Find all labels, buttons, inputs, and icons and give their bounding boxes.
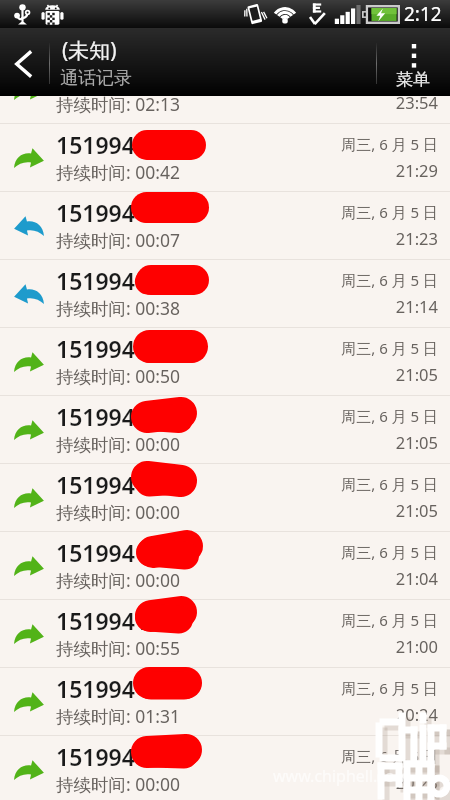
staticText: 周三, 6 月 5 日	[341, 338, 438, 358]
staticText: 1519941	[56, 537, 149, 568]
staticText: 151994	[56, 129, 135, 160]
staticText: 1519941	[56, 401, 149, 432]
staticText: 持续时间: 00:07	[56, 228, 180, 252]
staticText: 周三, 6 月 5 日	[341, 610, 438, 630]
staticText: 周三, 6 月 5 日	[341, 678, 438, 698]
button[interactable]: Back	[0, 28, 49, 96]
button[interactable]: 1519941	[0, 192, 450, 259]
staticText: 周三, 6 月 5 日	[341, 134, 438, 154]
staticText: 持续时间: 01:31	[56, 704, 180, 728]
button[interactable]: 151994	[0, 124, 450, 191]
staticText: 周三, 6 月 5 日	[341, 66, 438, 86]
staticText: 周三, 6 月 5 日	[341, 474, 438, 494]
staticText: 23:54	[395, 91, 438, 113]
button[interactable]: 1519941	[0, 532, 450, 599]
button[interactable]: 1519941	[0, 464, 450, 531]
button[interactable]: 151994	[0, 668, 450, 735]
button[interactable]: 1519941	[0, 600, 450, 667]
button[interactable]: 151994	[0, 328, 450, 395]
staticText: 持续时间: 00:00	[56, 772, 180, 796]
staticText: 151994	[56, 333, 135, 364]
staticText: 21:04	[395, 567, 438, 589]
staticText: 21:29	[395, 159, 438, 181]
staticText: 持续时间: 00:50	[56, 364, 180, 388]
staticText: 20:24	[395, 703, 438, 725]
staticText: 21:23	[395, 227, 438, 249]
staticText: www.chiphell.com	[273, 765, 410, 787]
staticText: 21:05	[395, 499, 438, 521]
staticText: 周三, 6 月 5 日	[341, 542, 438, 562]
staticText: 持续时间: 00:00	[56, 568, 180, 592]
staticText: 持续时间: 00:55	[56, 636, 180, 660]
staticText: 1519941	[56, 469, 149, 500]
button[interactable]: 151994	[0, 260, 450, 327]
button[interactable]: 151994	[0, 736, 450, 800]
staticText: 周三, 6 月 5 日	[341, 406, 438, 426]
staticText: 1519940	[56, 61, 149, 92]
button[interactable]: 1519941	[0, 396, 450, 463]
staticText: 1519941	[56, 605, 149, 636]
button[interactable]: 菜单 Menu	[385, 28, 450, 96]
button[interactable]: 1519940	[0, 56, 450, 123]
staticText: 通话记录	[60, 67, 132, 90]
staticText: 周三, 6 月 5 日	[341, 270, 438, 290]
staticText: 151994	[56, 741, 135, 772]
staticText: 2:12	[404, 1, 442, 27]
staticText: 1519941	[56, 197, 149, 228]
staticText: 持续时间: 02:13	[56, 92, 180, 116]
staticText: 20:23	[395, 771, 438, 793]
staticText: 持续时间: 00:38	[56, 296, 180, 320]
staticText: 周三, 6 月 5 日	[341, 202, 438, 222]
staticText: 21:14	[395, 295, 438, 317]
staticText: 21:05	[395, 363, 438, 385]
staticText: 21:05	[395, 431, 438, 453]
staticText: 菜单	[396, 69, 430, 90]
staticText: 持续时间: 00:00	[56, 500, 180, 524]
staticText: 151994	[56, 673, 135, 704]
staticText: 持续时间: 00:42	[56, 160, 180, 184]
staticText: 151994	[56, 265, 135, 296]
staticText: (未知)	[62, 36, 117, 65]
staticText: 周三, 6 月 5 日	[341, 746, 438, 766]
staticText: 持续时间: 00:00	[56, 432, 180, 456]
staticText: 21:00	[395, 635, 438, 657]
